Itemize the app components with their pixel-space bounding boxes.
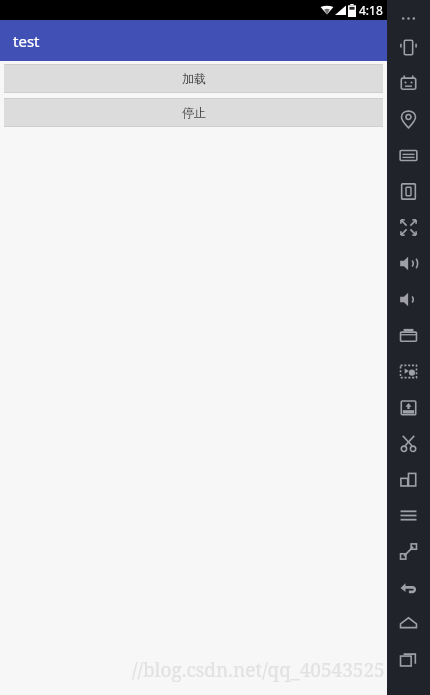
staticText: 4:18 [359, 2, 383, 18]
staticText: //blog.csdn.net/qq_40543525 [132, 657, 385, 683]
button[interactable]: Volume down [387, 281, 430, 317]
button[interactable]: Install APK [387, 389, 430, 425]
staticText: test [13, 31, 40, 51]
button[interactable]: 加载 [4, 64, 383, 93]
button[interactable]: Snip [387, 425, 430, 461]
button[interactable]: 停止 [4, 98, 383, 127]
button[interactable]: Keyboard [387, 137, 430, 173]
button[interactable]: Layout [387, 461, 430, 497]
button[interactable]: Menu [387, 497, 430, 533]
button[interactable]: Record [387, 353, 430, 389]
button[interactable]: Back [387, 569, 430, 605]
staticText: 停止 [182, 105, 206, 120]
button[interactable]: Zoom [387, 209, 430, 245]
button[interactable]: Camera [387, 317, 430, 353]
button[interactable]: Resize [387, 533, 430, 569]
button[interactable]: Location [387, 101, 430, 137]
button[interactable]: Overview [387, 641, 430, 677]
button[interactable]: Virtual sensors [387, 65, 430, 101]
button[interactable]: Volume up [387, 245, 430, 281]
button[interactable]: Battery [387, 173, 430, 209]
staticText: 加载 [182, 71, 206, 86]
button[interactable]: More [387, 7, 430, 29]
button[interactable]: Rotate [387, 29, 430, 65]
button[interactable]: Home [387, 605, 430, 641]
